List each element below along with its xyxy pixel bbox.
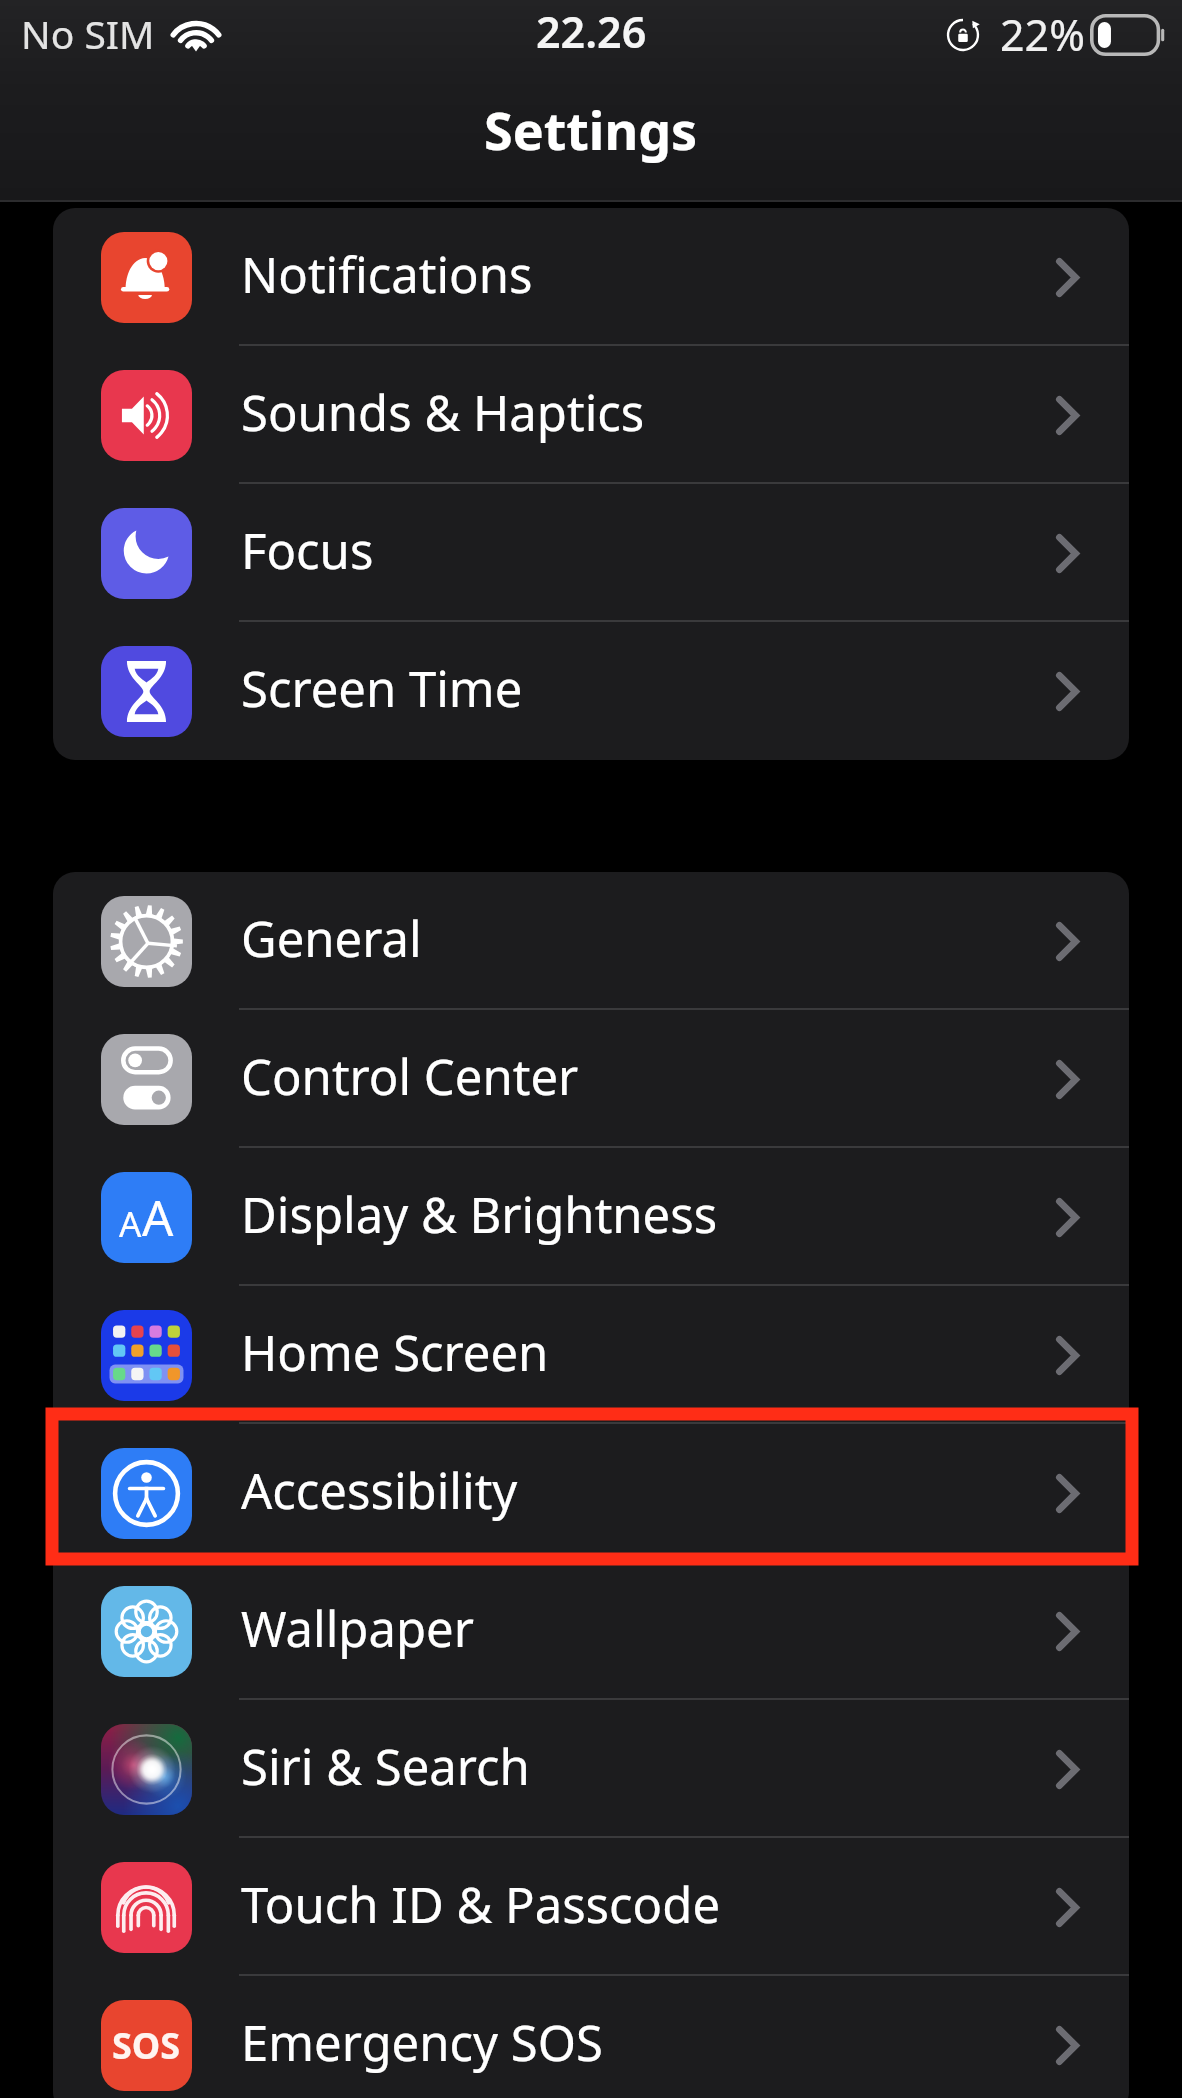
staticText: Focus	[241, 517, 374, 584]
other: Open Emergency SOS	[1056, 2026, 1079, 2065]
staticText: A	[119, 1200, 142, 1248]
staticText: Wallpaper	[241, 1595, 474, 1662]
button[interactable]: Siri & Search	[53, 1700, 1129, 1838]
staticText: No SIM	[21, 7, 155, 60]
staticText: General	[241, 905, 422, 972]
other: Open Accessibility	[1056, 1474, 1079, 1513]
staticText: Settings	[484, 94, 698, 165]
staticText: Screen Time	[241, 655, 523, 722]
button[interactable]: Accessibility	[53, 1424, 1129, 1562]
other: Open Siri & Search	[1056, 1750, 1079, 1789]
other: Open Sounds & Haptics	[1056, 396, 1079, 435]
button[interactable]: Touch ID & Passcode	[53, 1838, 1129, 1976]
other: Open Focus	[1056, 534, 1079, 573]
other: Wi-Fi signal	[173, 21, 219, 53]
staticText: Emergency SOS	[241, 2009, 603, 2076]
button[interactable]: A	[53, 1148, 1129, 1286]
staticText: Touch ID & Passcode	[241, 1871, 721, 1938]
other: Open Wallpaper	[1056, 1612, 1079, 1651]
staticText: A	[142, 1184, 174, 1251]
staticText: Accessibility	[241, 1457, 518, 1524]
staticText: Siri & Search	[241, 1733, 530, 1800]
button[interactable]: SOS	[53, 1976, 1129, 2098]
other: Rotation lock	[946, 18, 980, 52]
other: Open Display & Brightness	[1056, 1198, 1079, 1237]
staticText: Home Screen	[241, 1319, 549, 1386]
button[interactable]: Sounds & Haptics	[53, 346, 1129, 484]
button[interactable]: Control Center	[53, 1010, 1129, 1148]
staticText: 22.26	[536, 2, 647, 61]
staticText: SOS	[112, 2021, 181, 2070]
staticText: Control Center	[241, 1043, 579, 1110]
other: Open Screen Time	[1056, 672, 1079, 711]
other: Battery 22 percent	[1090, 14, 1168, 56]
staticText: 22%	[1000, 5, 1085, 64]
button[interactable]: Screen Time	[53, 622, 1129, 760]
other: Open Touch ID & Passcode	[1056, 1888, 1079, 1927]
button[interactable]: Home Screen	[53, 1286, 1129, 1424]
other: Open Notifications	[1056, 258, 1079, 297]
button[interactable]: General	[53, 872, 1129, 1010]
staticText: Sounds & Haptics	[241, 379, 645, 446]
button[interactable]: Notifications	[53, 208, 1129, 346]
staticText: Display & Brightness	[241, 1181, 718, 1248]
other: Open General	[1056, 922, 1079, 961]
other: Open Home Screen	[1056, 1336, 1079, 1375]
button[interactable]: Focus	[53, 484, 1129, 622]
button[interactable]: Wallpaper	[53, 1562, 1129, 1700]
staticText: Notifications	[241, 241, 533, 308]
other: Open Control Center	[1056, 1060, 1079, 1099]
